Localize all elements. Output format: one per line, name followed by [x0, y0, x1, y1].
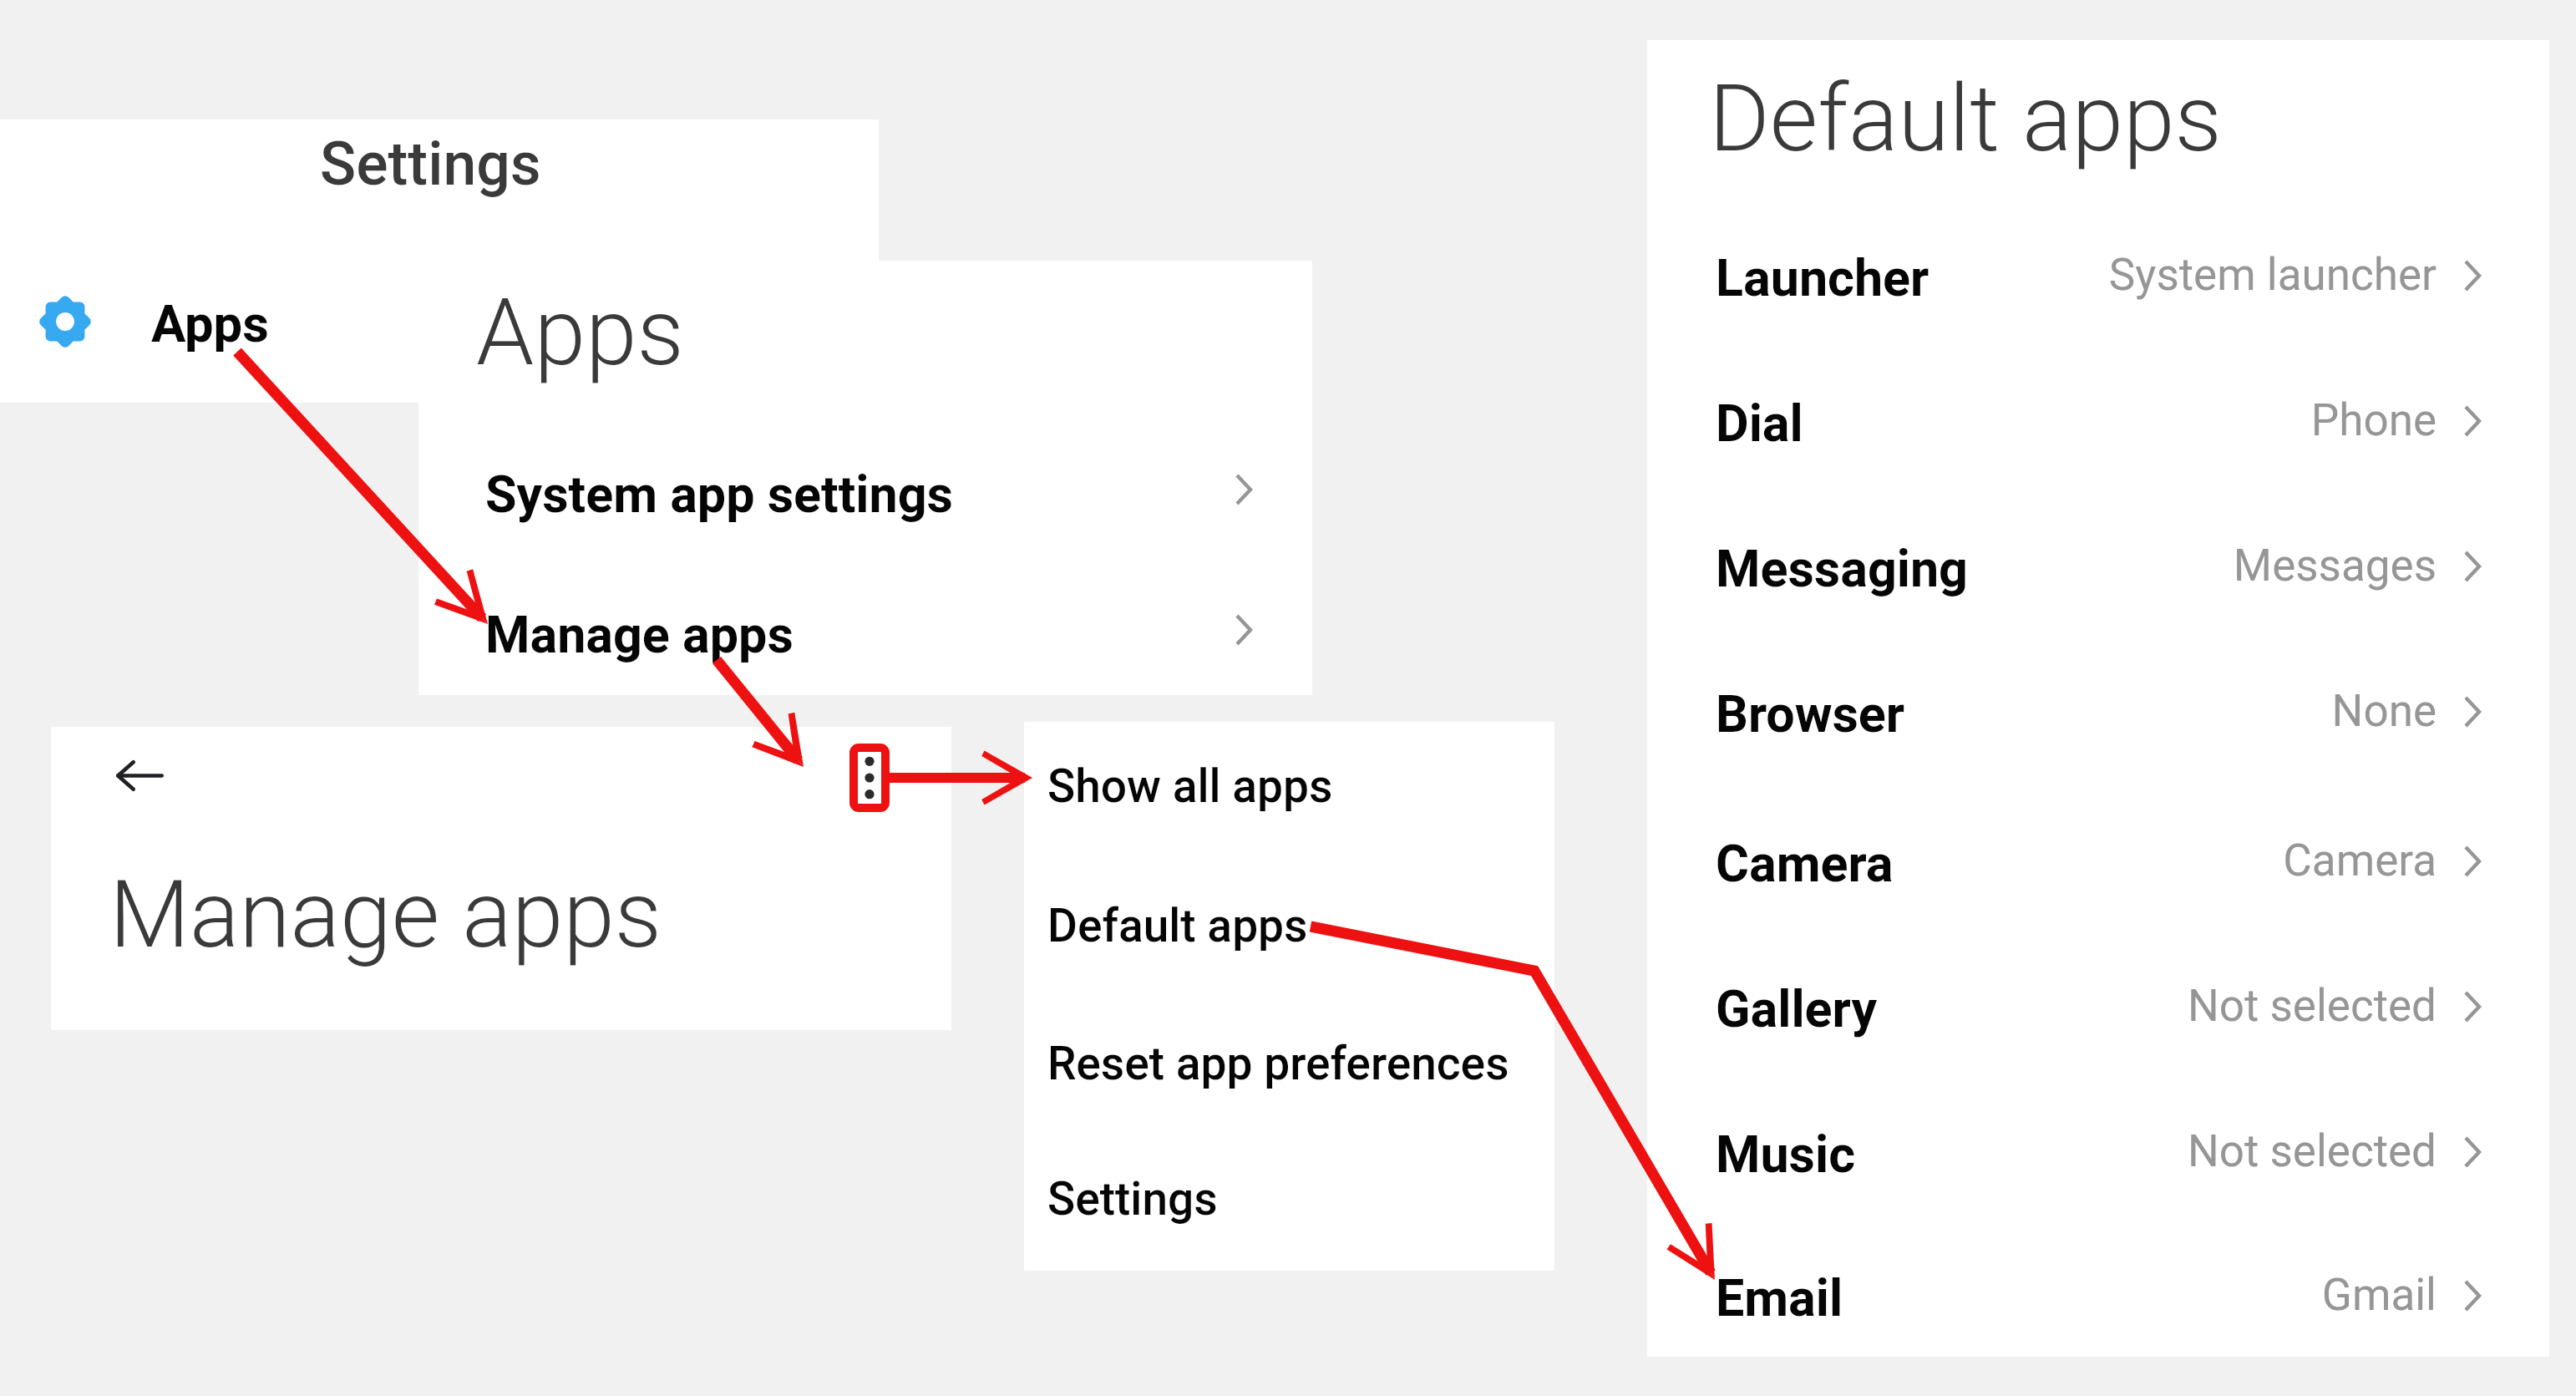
button[interactable]: Reset app preferences — [1024, 995, 1554, 1130]
button[interactable]: Browser — [1647, 640, 2549, 785]
staticText: Not selected — [1685, 980, 2437, 1038]
staticText: Apps — [476, 278, 684, 387]
staticText: Not selected — [1685, 1125, 2437, 1183]
staticText: Settings — [1047, 1172, 1218, 1226]
staticText: System app settings — [485, 464, 953, 524]
staticText: Messaging — [1716, 539, 1968, 598]
staticText: None — [1685, 685, 2437, 743]
staticText: Camera — [1685, 835, 2437, 892]
staticText: System launcher — [1685, 249, 2437, 307]
button[interactable]: System app settings — [418, 418, 1312, 560]
staticText: Default apps — [1047, 899, 1308, 952]
button[interactable]: Manage apps — [418, 560, 1312, 695]
button[interactable]: Gallery — [1647, 935, 2549, 1080]
staticText: Gmail — [1685, 1269, 2437, 1327]
staticText: Messages — [1685, 540, 2437, 597]
staticText: Phone — [1685, 394, 2437, 452]
button[interactable]: Launcher — [1647, 204, 2549, 349]
staticText: Manage apps — [485, 605, 794, 664]
button[interactable]: Default apps — [1024, 857, 1554, 992]
button[interactable]: Camera — [1647, 789, 2549, 935]
staticText: Music — [1716, 1124, 1856, 1184]
button[interactable]: Dial — [1647, 349, 2549, 495]
button[interactable]: Music — [1647, 1080, 2549, 1226]
staticText: Manage apps — [109, 860, 662, 969]
staticText: Launcher — [1716, 248, 1929, 307]
staticText: Default apps — [1709, 64, 2222, 173]
staticText: Email — [1716, 1268, 1843, 1327]
staticText: Show all apps — [1047, 759, 1333, 813]
staticText: Gallery — [1716, 979, 1878, 1038]
staticText: Settings — [320, 129, 541, 200]
button[interactable]: Back — [88, 732, 192, 820]
staticText: Apps — [151, 294, 269, 354]
staticText: Reset app preferences — [1047, 1037, 1509, 1090]
button[interactable]: Messaging — [1647, 495, 2549, 640]
staticText: Camera — [1716, 834, 1894, 893]
button[interactable]: More options — [849, 744, 890, 812]
button[interactable]: Settings — [1024, 1130, 1554, 1266]
button[interactable]: Email — [1647, 1224, 2549, 1369]
staticText: Dial — [1716, 393, 1803, 453]
staticText: Browser — [1716, 684, 1905, 744]
button[interactable]: Show all apps — [1024, 718, 1554, 853]
button[interactable]: Apps — [0, 251, 879, 393]
